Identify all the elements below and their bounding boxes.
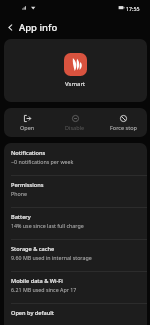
- button[interactable]: Notifications: [4, 143, 147, 175]
- staticText: 6.21 MB used since Apr 17: [11, 286, 77, 293]
- button[interactable]: Storage & cache: [4, 239, 147, 271]
- staticText: Open: [20, 124, 35, 131]
- button[interactable]: Back: [2, 19, 18, 35]
- staticText: Battery: [11, 213, 31, 221]
- button[interactable]: Permissions: [4, 175, 147, 207]
- staticText: Storage & cache: [11, 245, 55, 253]
- button[interactable]: Open by default: [4, 303, 147, 325]
- staticText: App info: [19, 21, 58, 34]
- staticText: Phone: [11, 190, 27, 197]
- staticText: Mobile data & Wi-Fi: [11, 277, 63, 285]
- button[interactable]: Open: [4, 108, 51, 131]
- staticText: ~0 notifications per week: [11, 158, 74, 165]
- staticText: Vsmart: [65, 80, 86, 88]
- button[interactable]: Mobile data & Wi-Fi: [4, 271, 147, 303]
- staticText: Notifications: [11, 149, 46, 157]
- staticText: 14% use since last full charge: [11, 222, 84, 229]
- staticText: Force stop: [110, 124, 137, 131]
- staticText: 9.60 MB used in internal storage: [11, 254, 92, 261]
- button[interactable]: Battery: [4, 207, 147, 239]
- staticText: Disable: [65, 124, 85, 131]
- staticText: Permissions: [11, 181, 44, 189]
- button: Disable: [51, 108, 99, 131]
- staticText: 17:55: [126, 5, 140, 12]
- button[interactable]: Force stop: [99, 108, 147, 131]
- staticText: Open by default: [11, 309, 54, 317]
